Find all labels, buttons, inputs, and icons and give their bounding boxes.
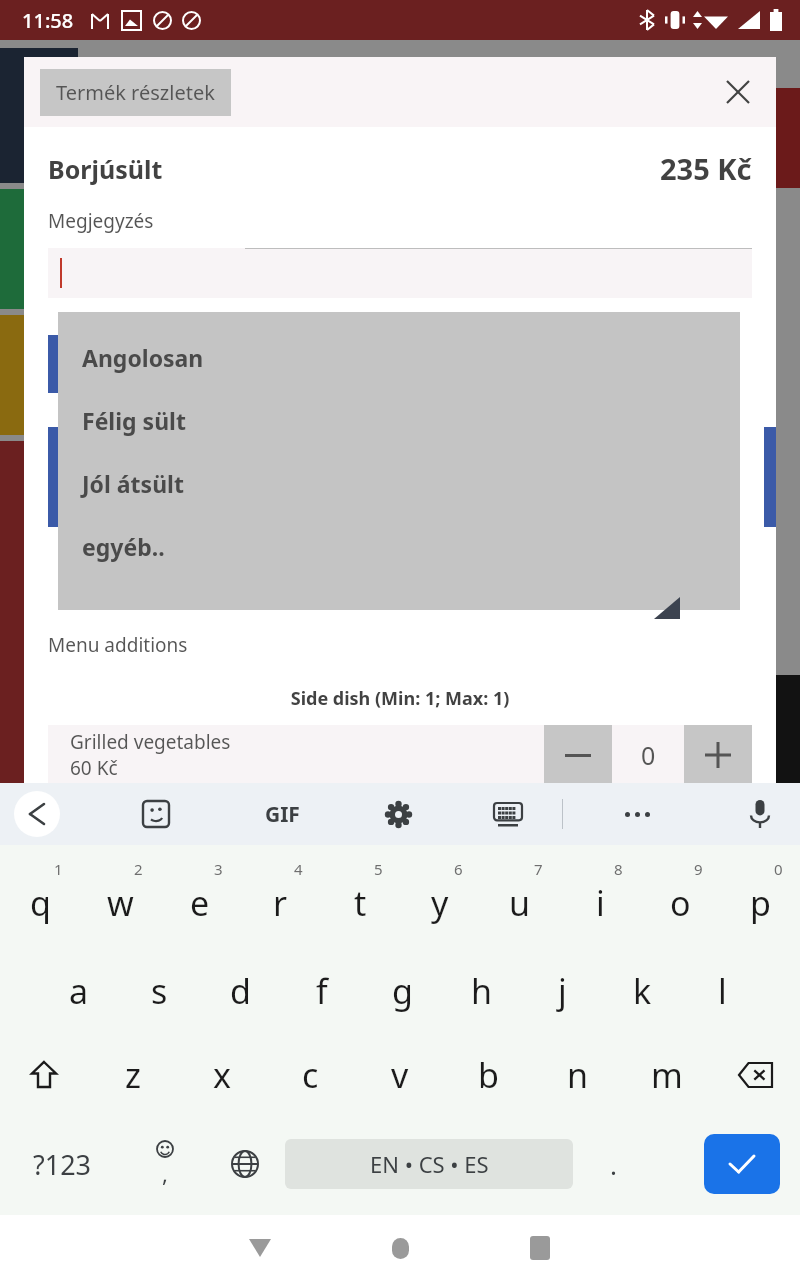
staticText: h — [471, 968, 493, 1014]
button[interactable]: l — [682, 943, 762, 1031]
button[interactable]: x — [177, 1031, 266, 1119]
button[interactable]: s — [119, 943, 200, 1031]
button[interactable]: n — [533, 1031, 622, 1119]
staticText: GIF — [265, 800, 300, 829]
staticText: Termék részletek — [56, 79, 215, 106]
button[interactable]: GIF — [252, 790, 312, 838]
button[interactable]: Increase — [684, 725, 752, 785]
staticText: m — [651, 1052, 683, 1098]
staticText: Menu additions — [48, 632, 188, 658]
staticText: 2 — [134, 859, 143, 879]
button[interactable]: Change language — [205, 1119, 285, 1209]
staticText: p — [750, 880, 771, 926]
button[interactable]: Termék részletek — [40, 69, 231, 116]
button[interactable]: egyéb.. — [58, 515, 740, 578]
button[interactable]: Settings — [374, 790, 422, 838]
button[interactable]: m — [622, 1031, 711, 1119]
staticText: g — [392, 968, 413, 1014]
staticText: w — [107, 880, 134, 926]
button[interactable]: a — [38, 943, 119, 1031]
button[interactable]: 2 — [80, 855, 160, 943]
staticText: b — [478, 1052, 499, 1098]
button[interactable]: h — [442, 943, 522, 1031]
button[interactable]: d — [200, 943, 281, 1031]
staticText: Borjúsült — [48, 152, 163, 186]
staticText: t — [354, 880, 367, 926]
staticText: 7 — [534, 859, 543, 879]
staticText: egyéb.. — [82, 531, 165, 562]
staticText: 8 — [614, 859, 623, 879]
button[interactable]: Shift — [0, 1031, 88, 1119]
staticText: Megjegyzés — [48, 208, 154, 234]
button[interactable]: 4 — [240, 855, 320, 943]
button[interactable]: Angolosan — [58, 326, 740, 389]
staticText: z — [125, 1052, 141, 1098]
staticText: x — [213, 1052, 231, 1098]
button[interactable]: Jól átsült — [58, 452, 740, 515]
button[interactable]: Stickers — [132, 790, 180, 838]
button[interactable]: EN • CS • ES — [285, 1139, 573, 1189]
button[interactable]: j — [522, 943, 602, 1031]
button[interactable]: 6 — [400, 855, 480, 943]
button[interactable]: Emoji — [125, 1119, 205, 1209]
button[interactable]: Recents — [495, 1218, 585, 1278]
staticText: v — [391, 1052, 409, 1098]
staticText: k — [633, 968, 652, 1014]
button[interactable]: g — [362, 943, 442, 1031]
staticText: r — [273, 880, 288, 926]
staticText: j — [558, 968, 567, 1014]
staticText: y — [431, 880, 449, 926]
staticText: i — [596, 880, 605, 926]
staticText: . — [610, 1147, 617, 1182]
staticText: 60 Kč — [70, 755, 118, 781]
button[interactable]: 7 — [480, 855, 560, 943]
staticText: d — [230, 968, 251, 1014]
button[interactable]: Voice input — [734, 788, 786, 840]
staticText: 9 — [694, 859, 703, 879]
staticText: 4 — [294, 859, 303, 879]
button[interactable]: f — [281, 943, 362, 1031]
button[interactable]: More options — [613, 790, 661, 838]
staticText: 235 Kč — [660, 149, 752, 188]
button[interactable]: Back — [215, 1218, 305, 1278]
button[interactable]: . — [573, 1119, 653, 1209]
button[interactable]: Decrease — [544, 725, 612, 785]
staticText: f — [316, 968, 328, 1014]
button[interactable]: Enter — [704, 1134, 780, 1194]
button[interactable]: Close — [716, 70, 760, 114]
button[interactable]: k — [602, 943, 682, 1031]
button[interactable]: c — [266, 1031, 355, 1119]
staticText: s — [151, 968, 168, 1014]
button[interactable]: 3 — [160, 855, 240, 943]
staticText: q — [30, 880, 51, 926]
staticText: 3 — [214, 859, 223, 879]
button[interactable]: Back — [14, 791, 60, 837]
staticText: 0 — [774, 859, 783, 879]
button[interactable]: 8 — [560, 855, 640, 943]
staticText: 6 — [454, 859, 463, 879]
staticText: Grilled vegetables — [70, 729, 231, 755]
staticText: , — [162, 1158, 168, 1188]
button[interactable]: Home — [355, 1218, 445, 1278]
button[interactable]: 1 — [0, 855, 80, 943]
button[interactable]: ?123 — [0, 1119, 125, 1209]
button[interactable]: z — [88, 1031, 177, 1119]
button[interactable]: 0 — [720, 855, 800, 943]
button[interactable] — [48, 248, 752, 298]
staticText: e — [190, 880, 210, 926]
staticText: Side dish (Min: 1; Max: 1) — [24, 686, 776, 711]
button[interactable]: 5 — [320, 855, 400, 943]
staticText: o — [670, 880, 691, 926]
button[interactable]: b — [444, 1031, 533, 1119]
staticText: n — [567, 1052, 589, 1098]
staticText: l — [718, 968, 727, 1014]
button[interactable]: 9 — [640, 855, 720, 943]
staticText: ?123 — [33, 1146, 92, 1183]
button[interactable]: Keyboard layout — [484, 790, 532, 838]
button[interactable]: Backspace — [711, 1031, 800, 1119]
staticText: u — [509, 880, 531, 926]
staticText: a — [69, 968, 89, 1014]
button[interactable]: Félig sült — [58, 389, 740, 452]
button[interactable]: v — [355, 1031, 444, 1119]
